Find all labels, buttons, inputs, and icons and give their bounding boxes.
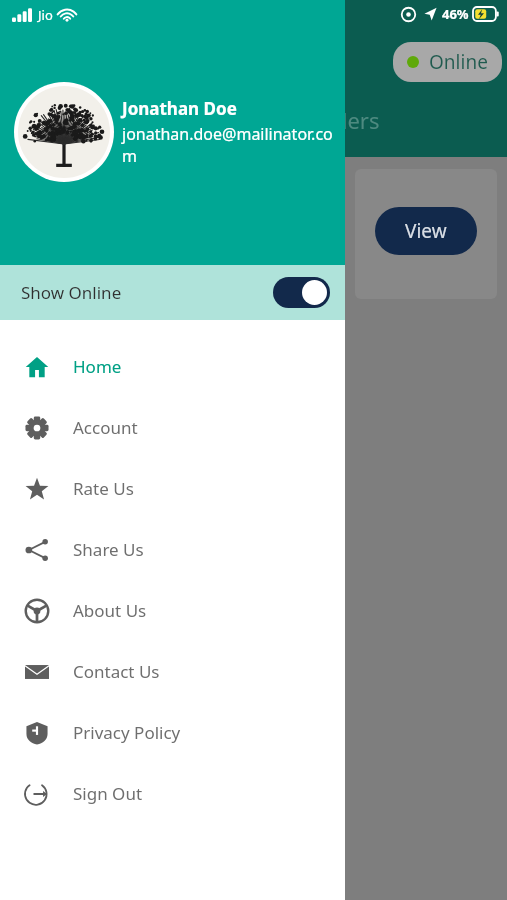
button[interactable]: Contact Us [0,641,345,702]
button[interactable]: Online [393,42,502,82]
staticText: Rate Us [73,477,134,500]
other: Privacy Policy [25,721,49,745]
staticText: Online [429,49,488,75]
button[interactable]: Account [0,397,345,458]
button[interactable]: Share Us [0,519,345,580]
other: Sign Out [25,782,49,806]
other: Home [25,355,49,379]
staticText: Show Online [21,281,122,304]
other: Share Us [25,538,49,562]
button[interactable]: Sign Out [0,763,345,824]
staticText: About Us [73,599,147,622]
button[interactable]: Show Online [0,265,345,320]
staticText: Contact Us [73,660,160,683]
staticText: View [405,218,447,244]
staticText: jonathan.doe@mailinator.com [122,123,337,167]
button[interactable]: Home [0,336,345,397]
staticText: Account [73,416,138,439]
staticText: Jonathan Doe [122,97,237,120]
staticText: Sign Out [73,782,143,805]
staticText: 46% [442,5,469,23]
staticText: Jio [38,6,53,24]
staticText: Last Orders [260,105,380,135]
button[interactable]: Privacy Policy [0,702,345,763]
staticText: Share Us [73,538,144,561]
button[interactable]: Rate Us [0,458,345,519]
staticText: Privacy Policy [73,721,181,744]
button[interactable]: View [375,207,477,255]
other: About Us [25,599,49,623]
other: Rate Us [25,477,49,501]
button[interactable]: About Us [0,580,345,641]
other: Contact Us [25,660,49,684]
other: Account [25,416,49,440]
staticText: Home [73,355,122,378]
